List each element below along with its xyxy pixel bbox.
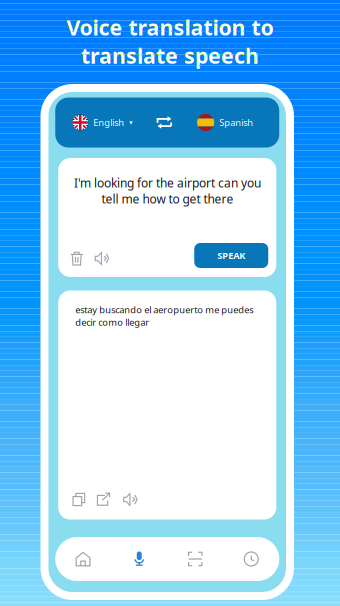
button[interactable]: Play audio xyxy=(89,243,115,268)
staticText: Voice translation to xyxy=(66,13,273,41)
staticText: ▾ xyxy=(129,119,132,126)
button[interactable]: Voice xyxy=(111,537,167,581)
button[interactable]: Share xyxy=(93,487,117,511)
button[interactable]: Copy xyxy=(67,487,91,511)
staticText: I'm looking for the airport can you tell… xyxy=(74,175,261,207)
button[interactable]: Play audio xyxy=(119,487,145,511)
staticText: English xyxy=(93,116,124,129)
button[interactable]: Delete xyxy=(65,243,89,268)
staticText: translate speech xyxy=(81,41,259,70)
button[interactable]: Scan xyxy=(167,537,223,581)
button[interactable]: Spanish xyxy=(197,108,253,137)
button[interactable]: Swap languages xyxy=(156,111,173,133)
staticText: SPEAK xyxy=(217,249,245,262)
button[interactable]: Home xyxy=(55,537,111,581)
button[interactable]: History xyxy=(223,537,279,581)
button[interactable]: SPEAK xyxy=(194,243,268,268)
button[interactable]: English xyxy=(72,108,132,136)
staticText: Spanish xyxy=(219,116,253,129)
staticText: estay buscando el aeropuerto me puedes d… xyxy=(75,303,253,328)
